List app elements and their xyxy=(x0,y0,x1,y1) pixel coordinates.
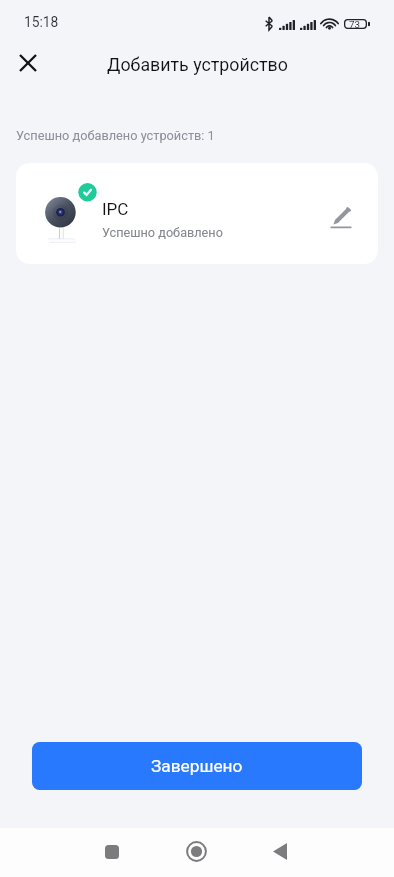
button[interactable]: Home xyxy=(175,830,218,873)
staticText: 73 xyxy=(349,19,361,29)
staticText: Добавить устройство xyxy=(107,54,288,75)
staticText: Успешно добавлено xyxy=(102,225,223,240)
staticText: IPC xyxy=(102,199,129,219)
button[interactable]: Back xyxy=(258,830,301,873)
button[interactable]: Edit device name xyxy=(326,202,356,232)
staticText: Успешно добавлено устройств: 1 xyxy=(16,128,215,143)
staticText: Завершено xyxy=(151,756,243,776)
button[interactable]: Recents xyxy=(90,830,133,873)
button[interactable]: Завершено xyxy=(32,742,362,790)
button[interactable]: Close xyxy=(10,45,46,81)
button[interactable]: IPC xyxy=(16,163,378,264)
staticText: 15:18 xyxy=(24,14,59,30)
